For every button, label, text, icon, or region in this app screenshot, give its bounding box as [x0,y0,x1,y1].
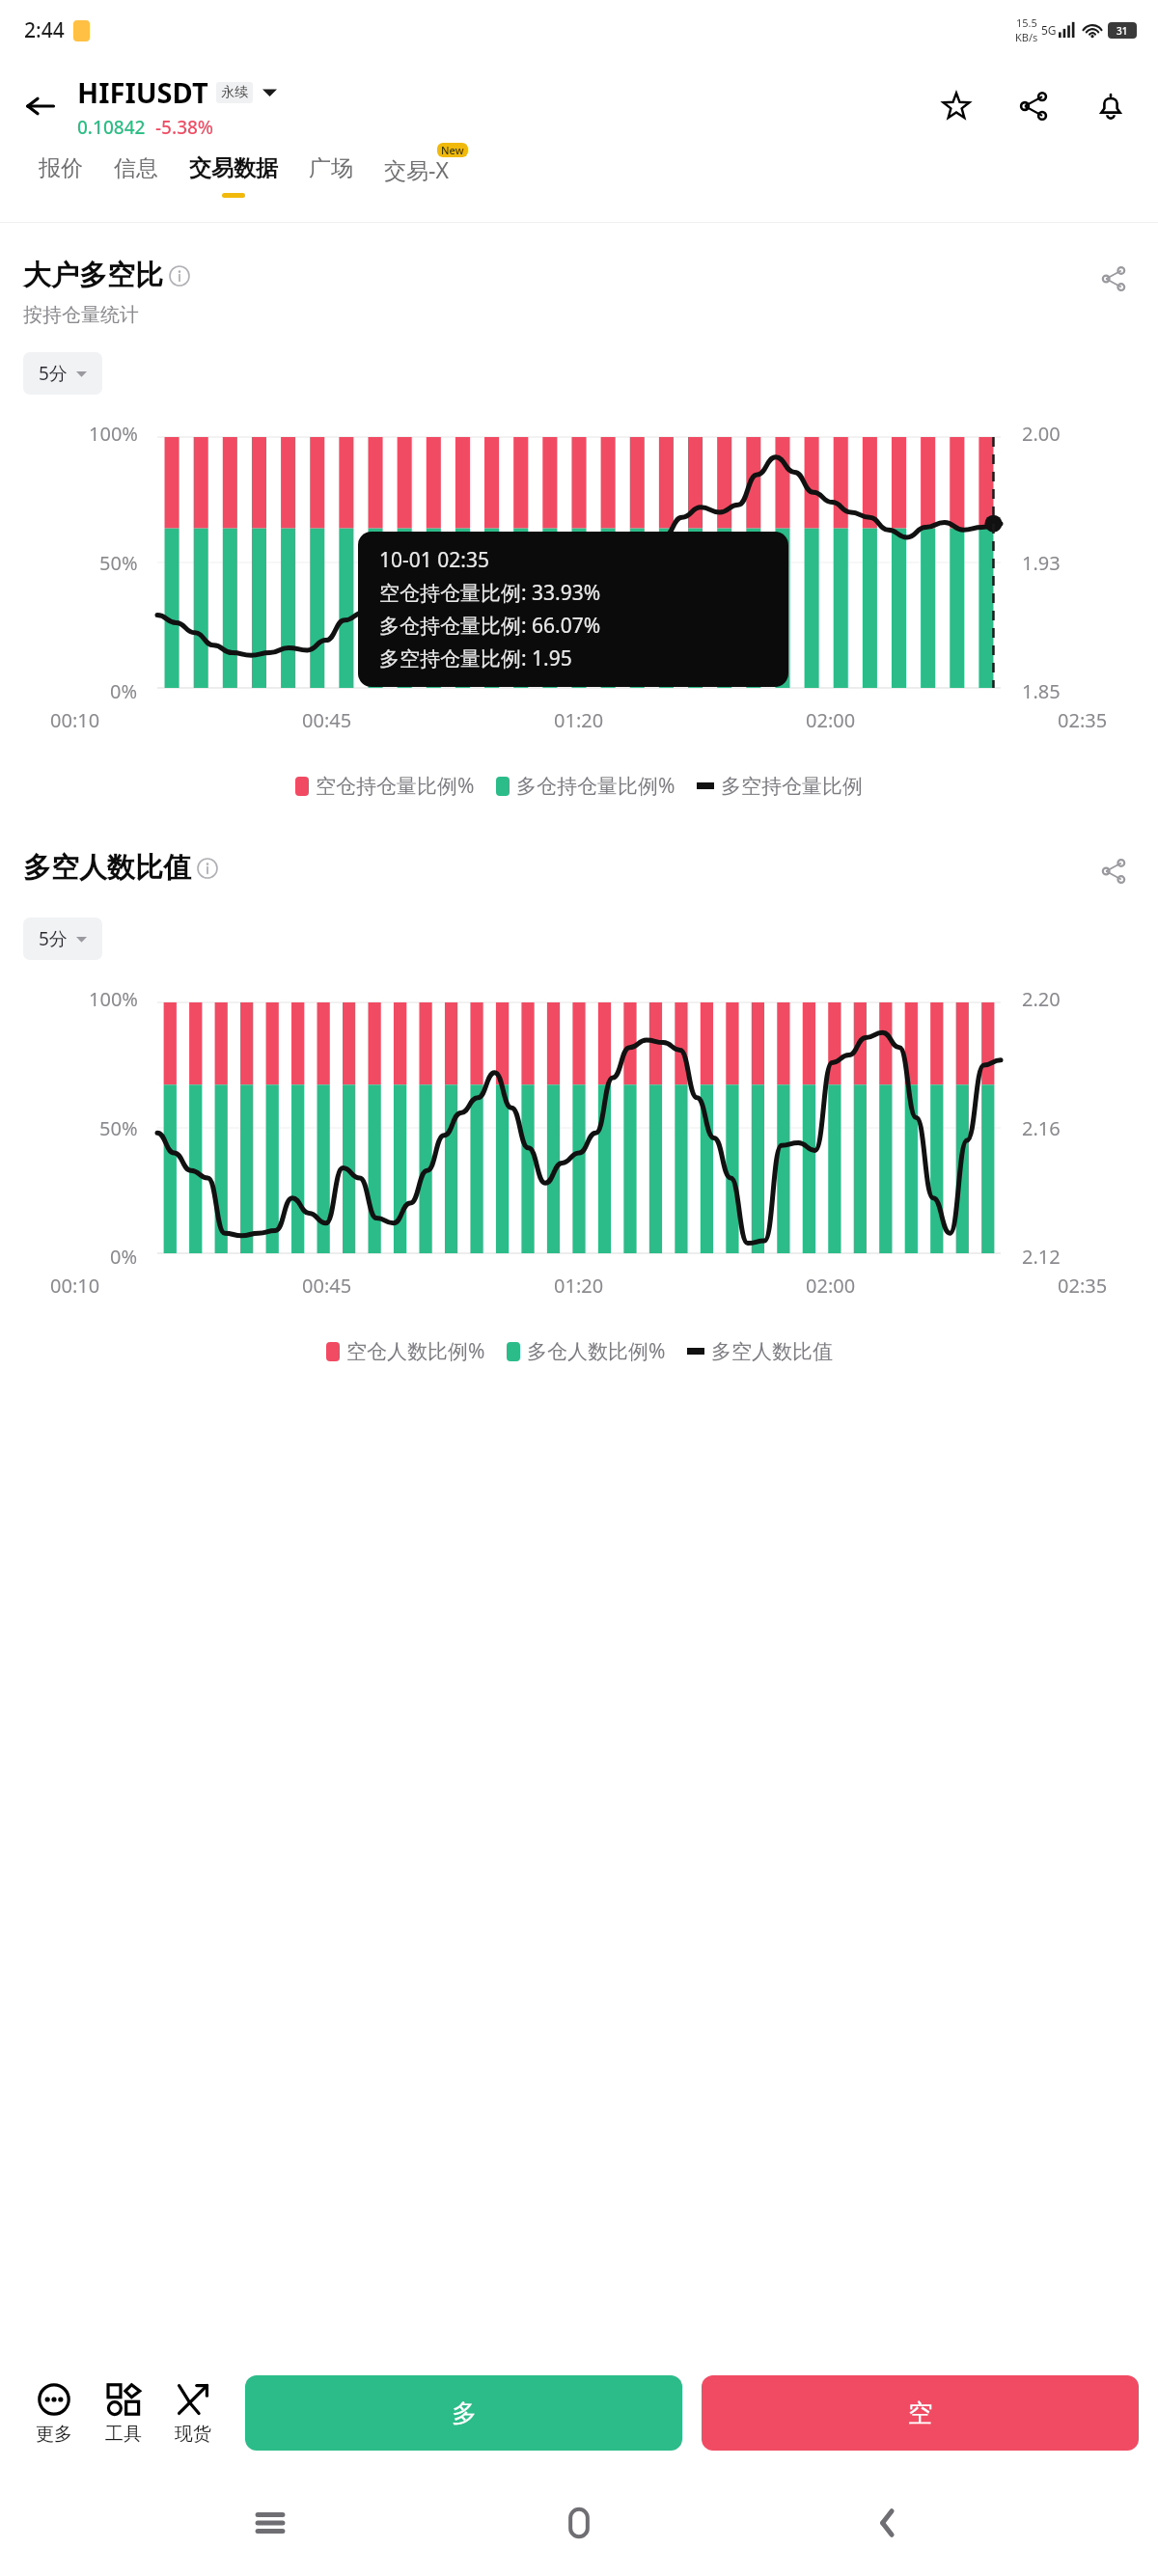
staticText: 31 [1117,24,1128,38]
staticText: 工具 [105,2423,142,2446]
button[interactable]: 多 [245,2375,682,2451]
staticText: 多空人数比值 [711,1339,833,1364]
staticText: 5G [1041,22,1057,38]
button[interactable]: 交易-X [384,154,449,195]
button[interactable]: Favorite [930,80,982,132]
staticText: 2.20 [1022,986,1061,1012]
button[interactable]: Back [14,79,68,133]
staticText: 多 [452,2398,477,2429]
button[interactable]: 5分 [23,918,102,960]
staticText: 0.10842 [77,115,146,140]
staticText: 空 [908,2398,933,2429]
staticText: 空仓持仓量比例% [316,772,475,800]
button[interactable]: 工具 [89,2381,158,2446]
button[interactable]: 信息 [114,154,158,193]
staticText: 00:45 [302,1273,352,1299]
staticText: 空仓持仓量比例: 33.93% [379,579,601,607]
button[interactable]: Info [169,265,190,287]
staticText: 1.85 [1022,678,1061,704]
button[interactable]: 广场 [309,154,353,193]
staticText: 02:35 [1058,707,1108,733]
staticText: 信息 [114,154,158,182]
button[interactable]: 更多 [19,2381,89,2446]
button[interactable]: 5分 [23,352,102,395]
staticText: 空仓人数比例% [346,1337,485,1365]
staticText: 更多 [36,2423,72,2446]
staticText: 00:10 [50,1273,100,1299]
staticText: 2:44 [24,16,65,44]
button[interactable]: Share [1092,850,1135,892]
staticText: 2.16 [1022,1115,1061,1141]
button[interactable]: Back [849,2484,926,2562]
staticText: 01:20 [554,1273,604,1299]
button[interactable]: Notifications [1085,80,1137,132]
staticText: 02:00 [806,707,856,733]
staticText: 50% [99,1115,138,1141]
staticText: 0% [110,678,138,704]
staticText: 多仓人数比例% [527,1337,666,1365]
staticText: 交易数据 [189,154,278,182]
staticText: 00:10 [50,707,100,733]
staticText: 多仓持仓量比例% [516,772,675,800]
staticText: 02:00 [806,1273,856,1299]
staticText: 02:35 [1058,1273,1108,1299]
staticText: 5分 [39,361,68,386]
staticText: 01:20 [554,707,604,733]
staticText: 100% [89,986,138,1012]
staticText: -5.38% [155,115,214,140]
staticText: 按持仓量统计 [23,303,139,327]
staticText: 永续 [221,84,248,101]
staticText: HIFIUSDT [77,73,208,111]
button[interactable]: 报价 [39,154,83,193]
staticText: 交易-X [384,154,449,184]
staticText: 报价 [39,154,83,182]
staticText: 大户多空比 [23,258,163,293]
button[interactable]: 空 [702,2375,1139,2451]
button[interactable]: Share [1092,258,1135,300]
staticText: 2.12 [1022,1244,1061,1270]
staticText: 15.5 [1016,15,1037,30]
staticText: 多空持仓量比例: 1.95 [379,644,572,672]
button[interactable]: Home [540,2484,618,2562]
staticText: 00:45 [302,707,352,733]
staticText: 10-01 02:35 [379,546,489,574]
staticText: 2.00 [1022,421,1061,447]
staticText: 广场 [309,154,353,182]
staticText: 多空人数比值 [23,850,191,886]
button[interactable]: 交易数据 [189,154,278,198]
button[interactable]: Share [1007,80,1060,132]
staticText: New [441,143,464,157]
staticText: 0% [110,1244,138,1270]
button[interactable] [262,85,277,99]
staticText: 5分 [39,926,68,951]
staticText: KB/s [1015,30,1038,44]
staticText: 多仓持仓量比例: 66.07% [379,612,601,640]
button[interactable]: 现货 [158,2381,228,2446]
staticText: 100% [89,421,138,447]
staticText: 多空持仓量比例 [721,774,863,799]
button[interactable]: Info [197,858,218,879]
button[interactable]: Recents [232,2484,309,2562]
staticText: 1.93 [1022,550,1061,576]
staticText: 50% [99,550,138,576]
staticText: 现货 [175,2423,211,2446]
